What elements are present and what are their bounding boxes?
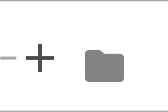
button[interactable]: Folder xyxy=(85,50,124,82)
button[interactable]: Remove xyxy=(0,57,16,60)
button[interactable]: Add xyxy=(26,44,54,72)
